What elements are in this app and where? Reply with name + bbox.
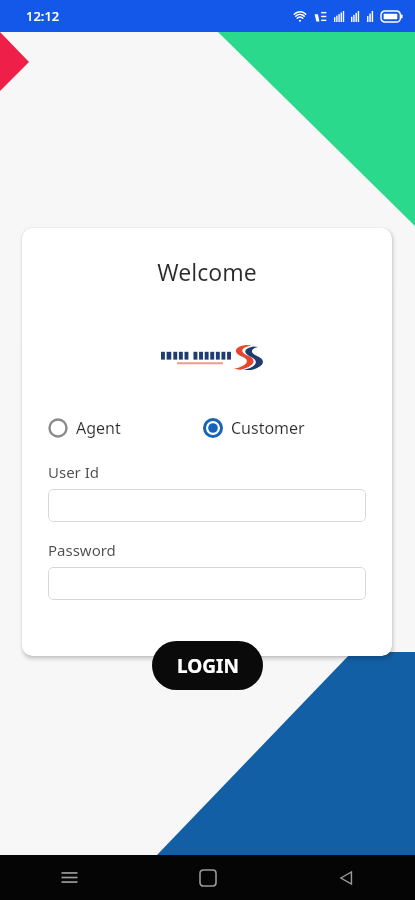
staticText: 12:12 xyxy=(26,7,60,25)
button[interactable]: LOGIN xyxy=(152,641,263,690)
button[interactable] xyxy=(48,567,366,600)
staticText: User Id xyxy=(48,462,100,482)
button[interactable]: Agent xyxy=(48,413,203,443)
staticText: Welcome xyxy=(22,256,392,287)
staticText: Customer xyxy=(231,417,305,439)
button[interactable]: Customer xyxy=(203,413,392,443)
button[interactable]: Back xyxy=(277,855,415,900)
button[interactable]: Home xyxy=(139,855,277,900)
staticText: LOGIN xyxy=(177,653,239,679)
button[interactable]: Recent apps xyxy=(0,855,139,900)
button[interactable] xyxy=(48,489,366,522)
staticText: Agent xyxy=(76,417,121,439)
staticText: Password xyxy=(48,540,116,560)
